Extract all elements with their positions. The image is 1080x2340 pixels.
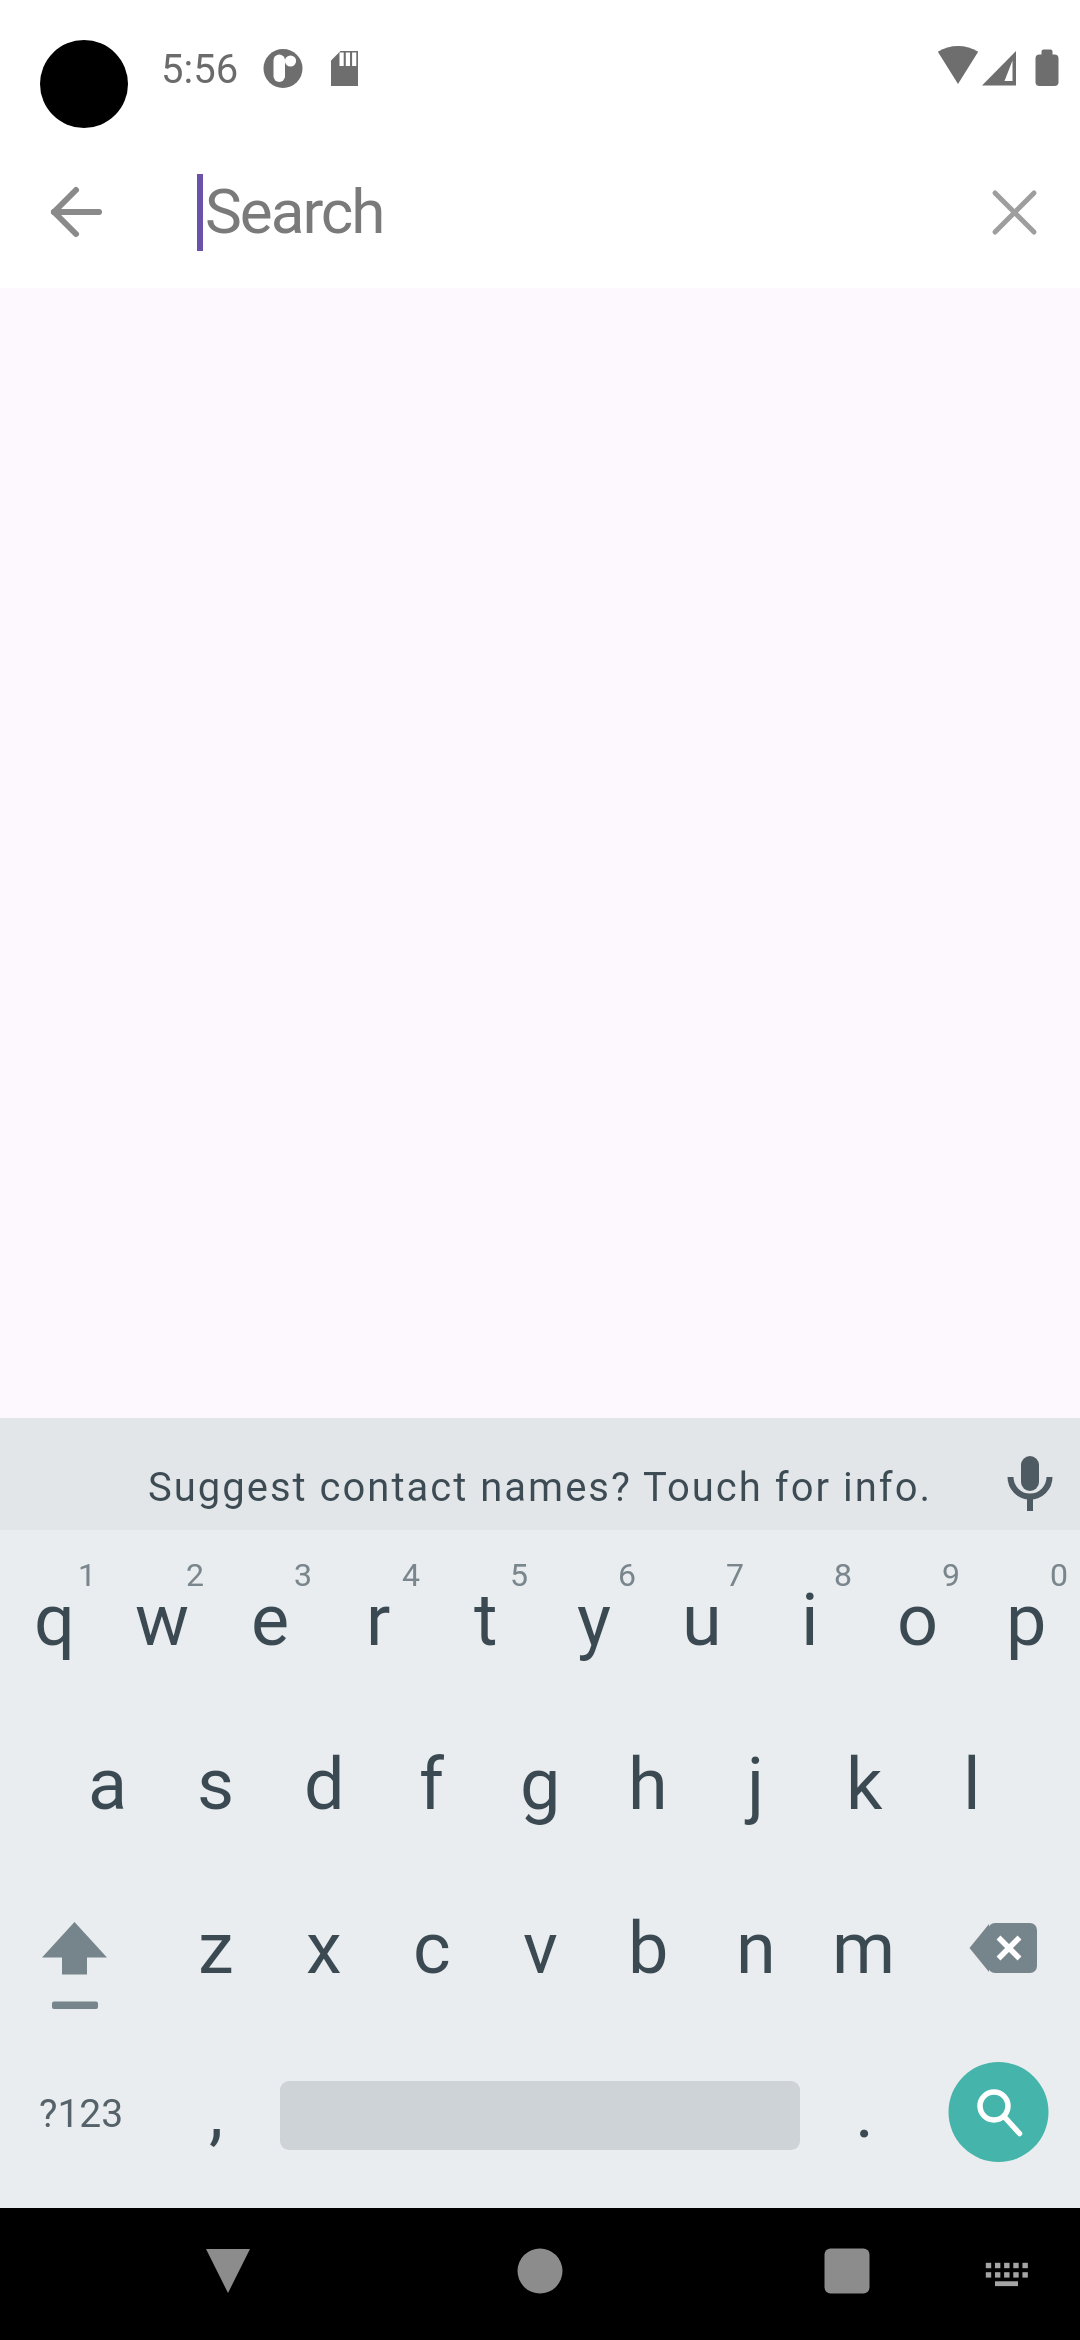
staticText: k: [846, 1742, 883, 1826]
button[interactable]: g: [486, 1700, 594, 1864]
button[interactable]: [0, 1864, 162, 2028]
button[interactable]: [956, 2208, 1080, 2340]
button[interactable]: j: [702, 1700, 810, 1864]
staticText: e: [251, 1578, 290, 1662]
staticText: t: [474, 1578, 498, 1662]
staticText: b: [628, 1906, 669, 1990]
staticText: 9: [942, 1556, 960, 1594]
button[interactable]: b: [594, 1864, 702, 2028]
staticText: ?123: [39, 2091, 124, 2137]
button[interactable]: [30, 164, 126, 260]
staticText: d: [304, 1742, 345, 1826]
staticText: Search: [205, 175, 384, 248]
staticText: g: [520, 1742, 561, 1826]
staticText: 1: [78, 1556, 96, 1594]
button[interactable]: l: [918, 1700, 1026, 1864]
button[interactable]: 8: [756, 1536, 864, 1700]
staticText: ,: [209, 2070, 224, 2154]
button[interactable]: x: [270, 1864, 378, 2028]
staticText: p: [1006, 1578, 1047, 1662]
staticText: x: [306, 1906, 342, 1990]
staticText: s: [197, 1742, 235, 1826]
button[interactable]: .: [810, 2028, 918, 2192]
button[interactable]: ?123: [0, 2028, 162, 2192]
button[interactable]: f: [378, 1700, 486, 1864]
button[interactable]: [464, 2208, 616, 2340]
staticText: 8: [834, 1556, 852, 1594]
button[interactable]: [966, 164, 1062, 260]
button[interactable]: 1: [0, 1536, 108, 1700]
button[interactable]: 6: [540, 1536, 648, 1700]
button[interactable]: [270, 2028, 810, 2192]
button[interactable]: a: [54, 1700, 162, 1864]
staticText: f: [419, 1742, 445, 1826]
staticText: q: [34, 1578, 75, 1662]
staticText: l: [963, 1742, 981, 1826]
staticText: u: [682, 1578, 722, 1662]
staticText: 7: [726, 1556, 744, 1594]
button[interactable]: [0, 1418, 1080, 1530]
staticText: 5: [510, 1556, 528, 1594]
staticText: v: [523, 1906, 558, 1990]
button[interactable]: [918, 2028, 1080, 2192]
button[interactable]: 3: [216, 1536, 324, 1700]
staticText: 6: [618, 1556, 636, 1594]
staticText: .: [855, 2070, 874, 2154]
staticText: 3: [294, 1556, 312, 1594]
staticText: h: [628, 1742, 668, 1826]
button[interactable]: 9: [864, 1536, 972, 1700]
button[interactable]: 0: [972, 1536, 1080, 1700]
button[interactable]: m: [810, 1864, 918, 2028]
button[interactable]: [788, 2208, 940, 2340]
button[interactable]: d: [270, 1700, 378, 1864]
button[interactable]: [990, 1438, 1070, 1518]
staticText: o: [897, 1578, 939, 1662]
button[interactable]: 4: [324, 1536, 432, 1700]
staticText: n: [736, 1906, 776, 1990]
staticText: j: [747, 1742, 765, 1826]
staticText: c: [413, 1906, 451, 1990]
button[interactable]: c: [378, 1864, 486, 2028]
button[interactable]: 7: [648, 1536, 756, 1700]
button[interactable]: 5: [432, 1536, 540, 1700]
staticText: i: [801, 1578, 819, 1662]
button[interactable]: ,: [162, 2028, 270, 2192]
button[interactable]: v: [486, 1864, 594, 2028]
staticText: m: [832, 1906, 896, 1990]
staticText: 4: [402, 1556, 420, 1594]
staticText: 2: [186, 1556, 204, 1594]
staticText: y: [577, 1578, 612, 1662]
button[interactable]: z: [162, 1864, 270, 2028]
button[interactable]: [152, 2208, 304, 2340]
button[interactable]: s: [162, 1700, 270, 1864]
staticText: 0: [1050, 1556, 1068, 1594]
button[interactable]: h: [594, 1700, 702, 1864]
button[interactable]: 2: [108, 1536, 216, 1700]
staticText: 5:56: [161, 46, 239, 93]
button[interactable]: n: [702, 1864, 810, 2028]
button[interactable]: k: [810, 1700, 918, 1864]
staticText: Suggest contact names? Touch for info.: [148, 1464, 933, 1511]
staticText: r: [366, 1578, 391, 1662]
staticText: z: [198, 1906, 234, 1990]
staticText: w: [135, 1578, 190, 1662]
staticText: a: [88, 1742, 128, 1826]
button[interactable]: [918, 1864, 1080, 2028]
